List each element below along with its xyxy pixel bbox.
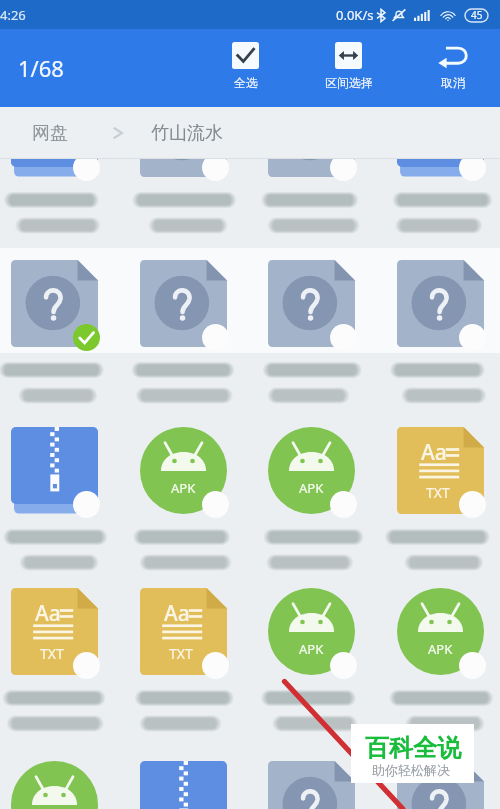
- button[interactable]: APK: [376, 588, 500, 749]
- button[interactable]: APK: [247, 427, 375, 588]
- button[interactable]: Aa: [119, 588, 247, 749]
- button[interactable]: 网盘: [0, 112, 108, 155]
- button[interactable]: 取消: [405, 29, 500, 107]
- button[interactable]: 区间选择: [292, 29, 405, 107]
- staticText: TXT: [426, 483, 450, 502]
- staticText: 助你轻松解决: [372, 762, 450, 778]
- button[interactable]: 竹山流水: [128, 112, 223, 155]
- staticText: TXT: [40, 644, 64, 663]
- button[interactable]: [247, 90, 375, 251]
- button[interactable]: [247, 761, 375, 809]
- button[interactable]: [119, 761, 247, 809]
- button[interactable]: [247, 260, 375, 421]
- button[interactable]: [376, 260, 500, 421]
- staticText: 4:26: [0, 6, 26, 24]
- staticText: APK: [299, 640, 324, 658]
- button[interactable]: APK: [119, 427, 247, 588]
- button[interactable]: 全选: [199, 29, 292, 107]
- button[interactable]: APK: [0, 761, 118, 809]
- button[interactable]: [119, 260, 247, 421]
- staticText: 竹山流水: [151, 122, 223, 145]
- staticText: Aa: [421, 438, 447, 467]
- button[interactable]: [119, 90, 247, 251]
- staticText: APK: [299, 479, 324, 497]
- staticText: Aa: [164, 599, 190, 628]
- button[interactable]: Aa: [376, 427, 500, 588]
- staticText: Aa: [35, 599, 61, 628]
- button[interactable]: [0, 427, 118, 588]
- button[interactable]: APK: [247, 588, 375, 749]
- staticText: APK: [428, 640, 453, 658]
- staticText: APK: [171, 479, 196, 497]
- staticText: 1/68: [18, 53, 64, 83]
- staticText: 全选: [234, 75, 258, 90]
- staticText: TXT: [169, 644, 193, 663]
- staticText: 百科全说: [365, 733, 461, 763]
- staticText: 0.0K/s: [336, 6, 374, 24]
- button[interactable]: [376, 90, 500, 251]
- staticText: 网盘: [32, 122, 68, 145]
- staticText: 区间选择: [325, 75, 373, 90]
- button[interactable]: [0, 90, 118, 251]
- button[interactable]: [0, 260, 118, 421]
- staticText: 45: [471, 8, 483, 22]
- button[interactable]: [376, 761, 500, 809]
- staticText: 取消: [441, 75, 465, 90]
- button[interactable]: Aa: [0, 588, 118, 749]
